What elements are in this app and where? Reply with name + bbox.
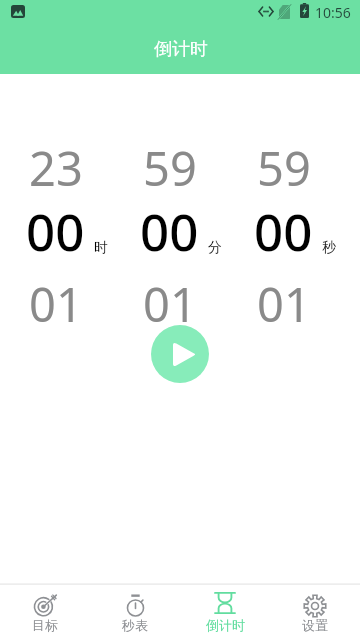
- button[interactable]: 目标: [0, 585, 90, 640]
- staticText: 01: [257, 272, 311, 336]
- staticText: 59: [257, 136, 311, 200]
- staticText: 10:56: [315, 3, 351, 22]
- staticText: 00: [254, 196, 313, 265]
- staticText: 59: [143, 136, 197, 200]
- staticText: 倒计时: [154, 38, 208, 61]
- staticText: 设置: [302, 617, 328, 633]
- staticText: 00: [26, 196, 85, 265]
- staticText: 目标: [32, 617, 58, 633]
- staticText: 倒计时: [206, 617, 245, 633]
- staticText: 分: [208, 239, 222, 257]
- staticText: 时: [94, 239, 108, 257]
- button[interactable]: 设置: [270, 585, 360, 640]
- staticText: 00: [140, 196, 199, 265]
- staticText: 01: [143, 272, 197, 336]
- staticText: 23: [29, 136, 83, 200]
- staticText: 秒表: [122, 617, 148, 633]
- button[interactable]: 秒表: [90, 585, 180, 640]
- button[interactable]: Start countdown: [151, 325, 209, 383]
- button[interactable]: 倒计时: [180, 585, 270, 640]
- staticText: 01: [29, 272, 83, 336]
- staticText: 秒: [322, 239, 336, 257]
